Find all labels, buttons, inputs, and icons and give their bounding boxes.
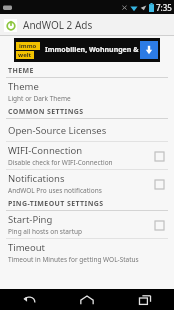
button[interactable]: Toggle Start-Ping xyxy=(152,218,166,232)
button[interactable]: Start-Ping xyxy=(0,211,174,238)
staticText: welt xyxy=(18,51,32,59)
button[interactable]: Back xyxy=(0,289,58,310)
button[interactable]: Notifications xyxy=(0,170,174,197)
staticText: WIFI-Connection xyxy=(8,144,83,157)
button[interactable]: immo xyxy=(14,38,160,62)
staticText: Timeout in Minutes for getting WOL-Statu… xyxy=(8,255,139,264)
staticText: immo xyxy=(19,42,37,50)
staticText: Disable check for WIFI-Connection xyxy=(8,158,113,167)
button[interactable]: Home xyxy=(58,289,116,310)
other: App icon xyxy=(4,19,17,32)
staticText: Open-Source Licenses xyxy=(8,124,107,137)
staticText: Start-Ping xyxy=(8,213,53,226)
button[interactable]: WIFI-Connection xyxy=(0,142,174,169)
button[interactable]: Toggle Notifications xyxy=(152,177,166,191)
staticText: AndWOL Pro uses notifications xyxy=(8,186,102,195)
button[interactable]: Recent apps xyxy=(116,289,174,310)
button[interactable]: Toggle WIFI-Connection xyxy=(152,149,166,163)
staticText: Ping all hosts on startup xyxy=(8,227,83,236)
staticText: THEME xyxy=(8,66,34,76)
staticText: 7:35 xyxy=(156,2,172,13)
staticText: Timeout xyxy=(8,241,46,254)
staticText: Theme xyxy=(8,80,39,93)
button[interactable]: App icon xyxy=(0,14,174,36)
button[interactable]: Download xyxy=(140,41,158,59)
button[interactable]: Theme xyxy=(0,78,174,105)
button[interactable]: Timeout xyxy=(0,239,174,266)
button[interactable]: Open-Source Licenses xyxy=(0,119,174,141)
staticText: Light or Dark Theme xyxy=(8,94,71,103)
staticText: AndWOL 2 Ads xyxy=(23,18,93,32)
staticText: Immobilien, Wohnungen & Häuser xyxy=(45,45,140,55)
staticText: PING-TIMEOUT SETTINGS xyxy=(8,199,104,209)
staticText: Notifications xyxy=(8,172,65,185)
staticText: COMMON SETTINGS xyxy=(8,107,84,117)
